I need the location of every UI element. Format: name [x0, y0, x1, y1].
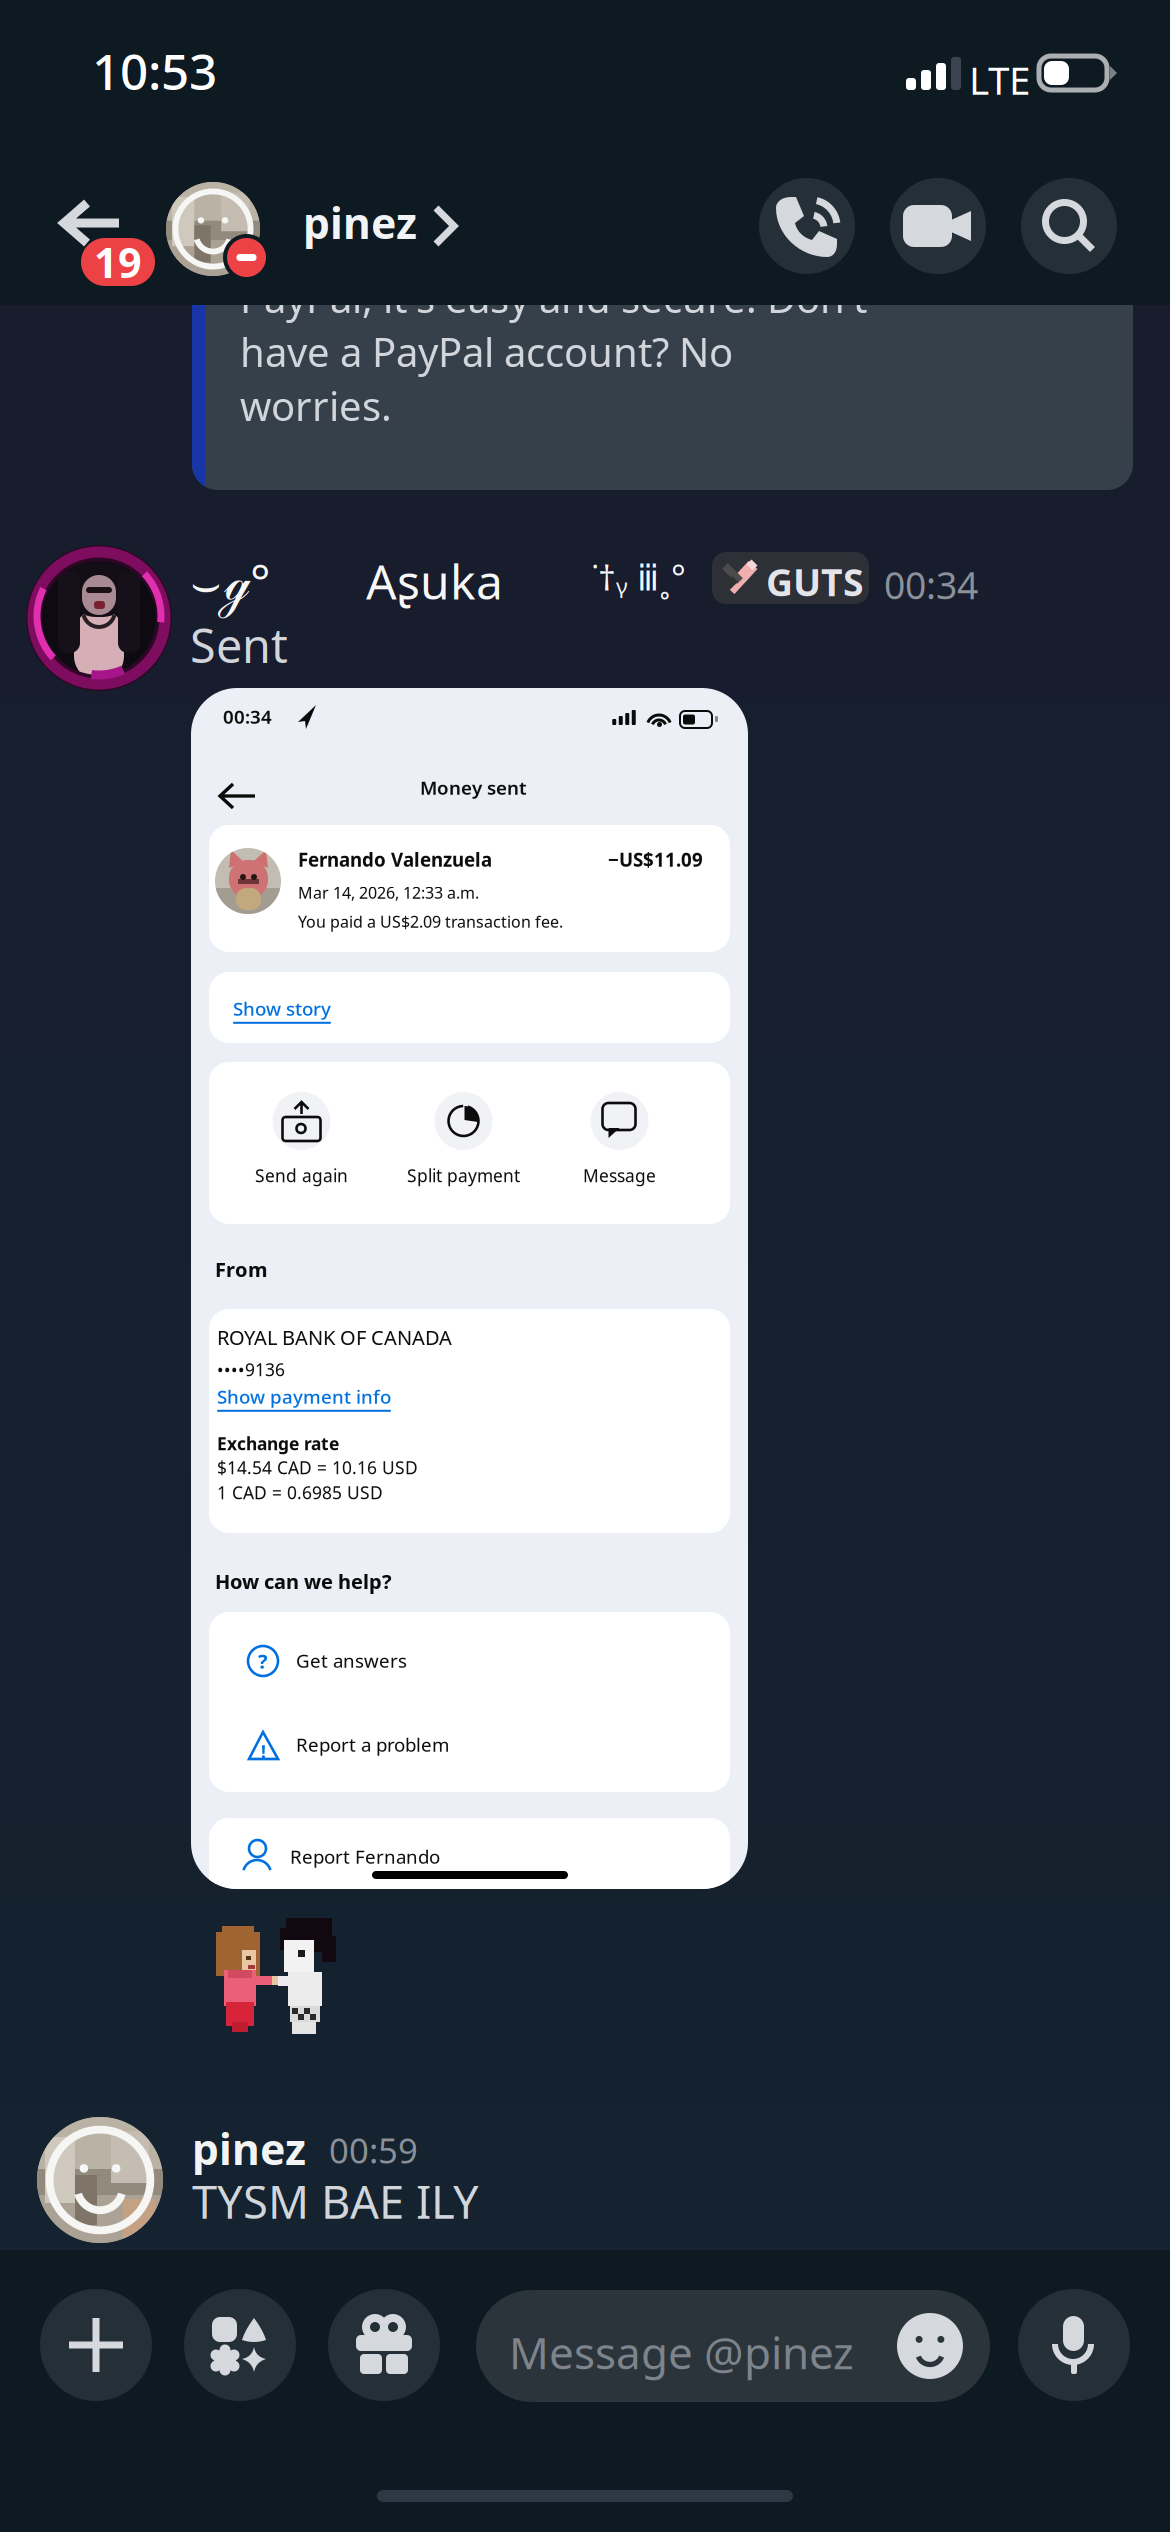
staticText: pinez: [192, 2120, 306, 2177]
staticText: Aʂuka: [366, 549, 503, 613]
staticText: 00:34: [884, 560, 978, 610]
button[interactable]: Video call: [890, 178, 986, 274]
staticText: 10:53: [92, 38, 217, 103]
button[interactable]: Send again: [255, 1092, 348, 1187]
staticText: ˙†ᵧ ⅲ˳°: [592, 554, 686, 600]
staticText: ?: [258, 1648, 268, 1674]
staticText: Report Fernando: [290, 1844, 440, 1869]
button[interactable]: Stickers: [184, 2289, 296, 2401]
staticText: TYSM BAE ILY: [192, 2171, 479, 2231]
staticText: GUTS: [766, 557, 864, 607]
staticText: Message @pinez: [509, 2323, 854, 2381]
button[interactable]: Add attachment: [40, 2289, 152, 2401]
button[interactable]: Report Fernando: [209, 1818, 730, 1908]
button[interactable]: Search: [1021, 178, 1117, 274]
staticText: Exchange rate: [217, 1432, 339, 1455]
button[interactable]: pinez: [166, 150, 486, 270]
button[interactable]: Voice message: [1018, 2289, 1130, 2401]
staticText: ⌣ℊ°: [190, 549, 271, 613]
staticText: Show payment info: [217, 1384, 391, 1409]
button[interactable]: Voice call: [759, 178, 855, 274]
button[interactable]: ?: [215, 1618, 655, 1704]
staticText: worries.: [240, 379, 392, 432]
staticText: Report a problem: [296, 1732, 449, 1757]
staticText: 19: [94, 235, 142, 289]
staticText: 00:34: [223, 704, 272, 729]
button[interactable]: !: [215, 1704, 655, 1784]
staticText: Show story: [233, 996, 331, 1021]
staticText: Fernando Valenzuela: [298, 847, 492, 872]
button[interactable]: Message: [583, 1092, 656, 1187]
staticText: pinez: [303, 194, 417, 251]
staticText: Split payment: [407, 1164, 520, 1187]
staticText: !: [261, 1740, 266, 1763]
button[interactable]: Split payment: [407, 1092, 520, 1187]
button[interactable]: Back: [56, 152, 176, 272]
staticText: You paid a US$2.09 transaction fee.: [298, 911, 563, 932]
staticText: 1 CAD = 0.6985 USD: [217, 1481, 383, 1504]
staticText: Mar 14, 2026, 12:33 a.m.: [298, 882, 479, 903]
staticText: Send again: [255, 1164, 348, 1187]
button[interactable]: Send a gift: [328, 2289, 440, 2401]
staticText: have a PayPal account? No: [240, 325, 733, 378]
staticText: 00:59: [329, 2127, 418, 2173]
staticText: Message: [583, 1164, 656, 1187]
button[interactable]: Show payment info: [217, 1384, 391, 1412]
staticText: Get answers: [296, 1648, 407, 1673]
staticText: From: [215, 1256, 268, 1283]
staticText: −US$11.09: [608, 847, 703, 872]
staticText: $14.54 CAD = 10.16 USD: [217, 1456, 418, 1479]
button[interactable]: Back: [203, 768, 272, 824]
staticText: ROYAL BANK OF CANADA: [217, 1324, 452, 1351]
staticText: LTE: [969, 54, 1030, 105]
staticText: PayPal, it's easy and secure. Don't: [240, 271, 867, 324]
button[interactable]: Show story: [209, 972, 730, 1043]
staticText: Sent: [190, 614, 288, 676]
button[interactable]: Message @pinez: [476, 2290, 990, 2402]
staticText: Money sent: [420, 775, 527, 800]
staticText: ••••9136: [217, 1358, 285, 1381]
staticText: How can we help?: [215, 1568, 392, 1595]
